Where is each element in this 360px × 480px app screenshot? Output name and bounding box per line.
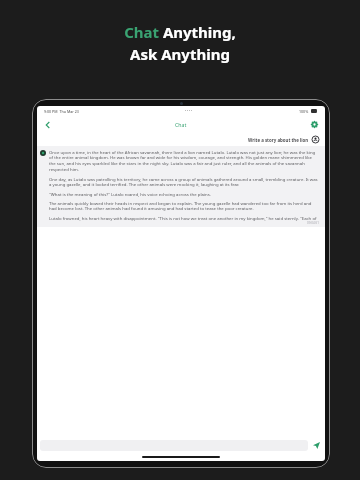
staticText: Ask Anything [130, 44, 230, 64]
staticText: Write a story about the lion [248, 137, 309, 143]
staticText: One day, as Lutalo was patrolling his te… [49, 176, 319, 188]
button[interactable]: Write a story about the lion [37, 136, 319, 143]
staticText: The animals quickly bowed their heads in… [49, 200, 319, 212]
staticText: Chat Anything, [124, 22, 236, 42]
staticText: 9:00 PM Thu Mar 23 [44, 109, 79, 114]
staticText: Chat [175, 121, 187, 128]
button[interactable]: Send [311, 440, 322, 451]
staticText: "What is the meaning of this?" Lutalo ro… [49, 191, 211, 197]
staticText: 09:04:51 [307, 221, 319, 225]
staticText: 100% [299, 109, 309, 114]
staticText: Once upon a time, in the heart of the Af… [49, 149, 319, 173]
staticText: • • • • [185, 109, 193, 113]
button[interactable]: Back [42, 119, 53, 130]
button[interactable]: Once upon a time, in the heart of the Af… [40, 149, 319, 225]
button[interactable]: Settings [309, 119, 320, 130]
staticText: Lutalo frowned, his heart heavy with dis… [49, 215, 317, 221]
